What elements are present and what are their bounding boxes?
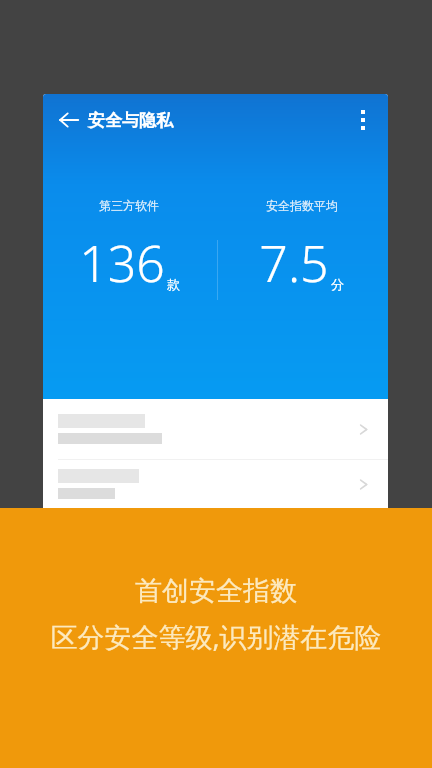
staticText: 安全与隐私 xyxy=(88,110,173,131)
button[interactable]: More options xyxy=(345,102,381,138)
button[interactable]: List item xyxy=(43,460,388,508)
button[interactable]: List item xyxy=(43,399,388,459)
staticText: 安全指数平均 xyxy=(266,198,338,213)
staticText: 区分安全等级,识别潜在危险 xyxy=(50,618,382,655)
staticText: 136 xyxy=(79,229,165,297)
staticText: 分 xyxy=(331,276,344,292)
staticText: 款 xyxy=(167,276,180,292)
button[interactable]: Back xyxy=(51,102,87,138)
staticText: 7.5 xyxy=(259,229,329,297)
staticText: 首创安全指数 xyxy=(135,574,297,608)
staticText: 第三方软件 xyxy=(99,198,159,213)
